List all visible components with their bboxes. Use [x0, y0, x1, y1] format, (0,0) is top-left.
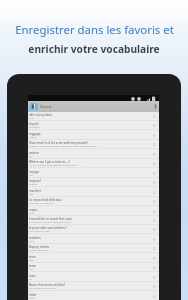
button[interactable]: Where can I get a train to ...?: [28, 159, 159, 168]
button[interactable]: train: [28, 254, 159, 263]
button[interactable]: Favourite: [150, 140, 159, 149]
staticText: car: [29, 155, 33, 158]
staticText: Combien cela coûte-t-il pour une voiture…: [29, 145, 98, 148]
button[interactable]: Favourite: [150, 121, 159, 130]
staticText: louer: [29, 264, 37, 268]
staticText: bagage: [29, 136, 38, 139]
button[interactable]: auto: [28, 273, 159, 282]
staticText: I would like to travel first class: [29, 217, 73, 221]
button[interactable]: voiture: [28, 150, 159, 159]
button[interactable]: More options: [151, 101, 159, 112]
staticText: bicycle: [29, 122, 39, 126]
button[interactable]: Favourite: [150, 188, 159, 197]
staticText: repas: [29, 208, 37, 212]
button[interactable]: Favourite: [150, 159, 159, 168]
staticText: enrichir votre vocabulaire: [28, 42, 160, 56]
button[interactable]: Favourite: [150, 207, 159, 216]
staticText: Où est-ce que je peux prendre un train p…: [29, 164, 81, 167]
staticText: Buying tickets: [29, 245, 50, 249]
button[interactable]: Favourite: [150, 178, 159, 187]
staticText: Acheter des billets: [29, 249, 49, 252]
button[interactable]: Favourite: [150, 263, 159, 272]
staticText: train: [29, 259, 35, 262]
staticText: Je peux aller aux toilettes ?: [29, 226, 67, 230]
staticText: Can I use the toilet?: [29, 230, 51, 233]
staticText: Le repas était délicieux: [29, 198, 62, 202]
staticText: cycle: [29, 117, 35, 120]
button[interactable]: repas: [28, 207, 159, 216]
button[interactable]: toilettes: [28, 235, 159, 244]
staticText: Nous cherchons un hôtel: [29, 283, 65, 287]
button[interactable]: Favourite: [150, 197, 159, 206]
button[interactable]: voyage: [28, 169, 159, 178]
staticText: toilet: [29, 240, 35, 243]
button[interactable]: luggage: [28, 131, 159, 140]
staticText: train: [29, 255, 36, 259]
staticText: How much is it for a car with two people…: [29, 141, 88, 145]
staticText: bicyclette: [29, 126, 40, 129]
staticText: voiture: [29, 151, 40, 155]
button[interactable]: hôtel: [28, 292, 159, 300]
staticText: hôtel: [29, 293, 37, 297]
staticText: voyage: [29, 170, 40, 174]
button[interactable]: Favourite: [150, 292, 159, 300]
button[interactable]: I would like to travel first class: [28, 216, 159, 225]
staticText: Favoris: [40, 105, 52, 109]
staticText: The meal was delicious: [29, 202, 54, 205]
staticText: Where can I get a train to ...?: [29, 160, 70, 164]
button[interactable]: marcher: [28, 188, 159, 197]
staticText: car: [29, 278, 33, 281]
button[interactable]: Favourite: [150, 254, 159, 263]
staticText: trip: [29, 174, 33, 177]
button[interactable]: Nous cherchons un hôtel: [28, 282, 159, 291]
staticText: We're looking for a hotel: [29, 287, 56, 290]
button[interactable]: Buying tickets: [28, 244, 159, 253]
button[interactable]: hospital: [28, 178, 159, 187]
button[interactable]: Favourite: [150, 244, 159, 253]
button[interactable]: Favourite: [150, 150, 159, 159]
button[interactable]: Favourite: [150, 225, 159, 234]
staticText: hôpital: [29, 183, 37, 186]
staticText: meal: [29, 212, 35, 215]
button[interactable]: Favourite: [150, 169, 159, 178]
button[interactable]: Favourite: [150, 235, 159, 244]
button[interactable]: aller à bicyclette: [28, 112, 159, 121]
staticText: auto: [29, 274, 36, 278]
staticText: toilettes: [29, 236, 41, 240]
staticText: Je voudrais voyager en première classe: [29, 221, 71, 224]
button[interactable]: Favourite: [150, 131, 159, 140]
button[interactable]: Favourite: [150, 112, 159, 121]
button[interactable]: Favourite: [150, 273, 159, 282]
staticText: rent: [29, 268, 34, 271]
button[interactable]: Le repas était délicieux: [28, 197, 159, 206]
button[interactable]: How much is it for a car with two people…: [28, 140, 159, 149]
button[interactable]: Favoris: [28, 101, 159, 112]
staticText: marcher: [29, 189, 42, 193]
staticText: hospital: [29, 179, 41, 183]
staticText: Enregistrer dans les favoris et: [15, 22, 174, 38]
button[interactable]: louer: [28, 263, 159, 272]
button[interactable]: bicycle: [28, 121, 159, 130]
staticText: walk: [29, 193, 34, 196]
staticText: luggage: [29, 132, 41, 136]
button[interactable]: Favourite: [150, 216, 159, 225]
staticText: hotel: [29, 297, 35, 300]
button[interactable]: Favourite: [150, 282, 159, 291]
button[interactable]: Je peux aller aux toilettes ?: [28, 225, 159, 234]
staticText: aller à bicyclette: [29, 113, 53, 117]
